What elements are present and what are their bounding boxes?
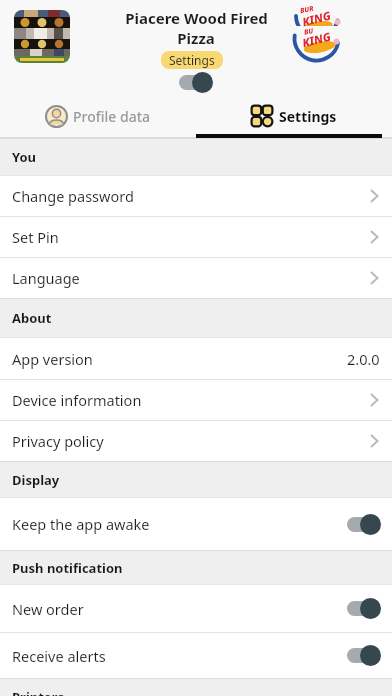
button[interactable]: Settings xyxy=(161,51,223,69)
button[interactable]: Keep the app awake xyxy=(0,498,392,550)
staticText: BU xyxy=(303,26,315,38)
staticText: About xyxy=(12,309,52,327)
staticText: Receive alerts xyxy=(12,646,106,666)
staticText: KING xyxy=(300,29,332,51)
button[interactable] xyxy=(179,72,213,93)
button[interactable]: Device information xyxy=(0,380,392,420)
button[interactable]: Set Pin xyxy=(0,217,392,257)
staticText: Pizza xyxy=(177,28,215,48)
staticText: Push notification xyxy=(12,559,123,577)
button[interactable]: Change password xyxy=(0,176,392,216)
staticText: Keep the app awake xyxy=(12,514,150,534)
staticText: Device information xyxy=(12,390,142,410)
staticText: Set Pin xyxy=(12,227,59,247)
staticText: 2.0.0 xyxy=(347,349,380,369)
button[interactable] xyxy=(347,645,381,666)
button[interactable]: New order xyxy=(0,585,392,632)
staticText: Piacere Wood Fired xyxy=(125,8,268,28)
staticText: KING xyxy=(300,8,332,30)
staticText: Profile data xyxy=(73,107,151,126)
staticText: BUR xyxy=(299,4,315,16)
button[interactable]: App version xyxy=(0,338,392,379)
button[interactable]: Privacy policy xyxy=(0,421,392,461)
staticText: App version xyxy=(12,349,93,369)
button[interactable]: Language xyxy=(0,258,392,298)
staticText: New order xyxy=(12,599,84,619)
staticText: Settings xyxy=(169,52,215,68)
staticText: Language xyxy=(12,268,80,288)
staticText: Change password xyxy=(12,186,134,206)
staticText: Privacy policy xyxy=(12,431,104,451)
button[interactable]: Profile data xyxy=(0,94,196,138)
staticText: Display xyxy=(12,471,60,489)
staticText: You xyxy=(12,148,37,166)
button[interactable]: Receive alerts xyxy=(0,633,392,678)
button[interactable]: Settings xyxy=(196,94,392,138)
button[interactable] xyxy=(347,598,381,619)
staticText: Printers xyxy=(12,688,64,696)
staticText: Settings xyxy=(279,107,337,126)
button[interactable] xyxy=(347,514,381,535)
